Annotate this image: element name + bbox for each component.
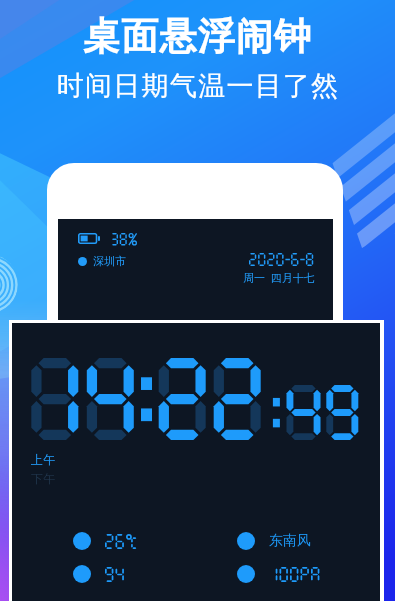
other: 14:22:49 [16, 355, 361, 445]
button[interactable]: 26℃ [73, 530, 138, 552]
button[interactable]: 100PA [237, 563, 322, 585]
staticText: 周一 四月十七 [243, 270, 315, 285]
other: Battery 38 percent [78, 233, 101, 244]
button[interactable]: 94 [73, 563, 126, 585]
button[interactable]: 14:22:49 [12, 323, 380, 601]
staticText: 下午 [31, 471, 55, 486]
staticText: 时间日期气温一目了然 [56, 69, 339, 103]
button[interactable]: 东南风 [237, 530, 311, 552]
staticText: 上午 [31, 452, 55, 467]
staticText: 东南风 [269, 532, 311, 550]
staticText: 深圳市 [93, 254, 126, 268]
staticText: 桌面悬浮闹钟 [83, 13, 313, 60]
